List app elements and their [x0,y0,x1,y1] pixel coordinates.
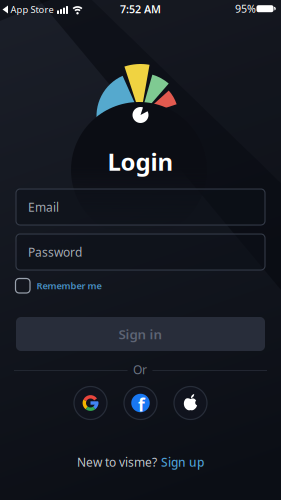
button[interactable]: Sign up [161,454,204,470]
staticText: 95% [235,2,256,16]
button[interactable]: App Store [2,3,53,16]
staticText: App Store [10,3,53,16]
button[interactable]: Sign in [16,317,265,351]
button[interactable]: f [124,386,157,419]
staticText: 7:52 AM [120,2,161,16]
staticText: Sign in [118,325,162,343]
button[interactable]: Password [16,234,265,270]
staticText: f [138,393,145,416]
staticText: Email [28,199,59,215]
staticText: New to visme? [77,454,157,470]
button[interactable]: Remember me [15,278,101,293]
staticText: Login [107,146,173,177]
staticText: Sign up [161,454,204,470]
button[interactable]: Email [16,189,265,225]
staticText: Remember me [36,280,101,292]
staticText: Or [133,361,147,377]
button[interactable] [174,386,207,419]
button[interactable] [74,386,107,419]
staticText: Password [28,244,82,260]
